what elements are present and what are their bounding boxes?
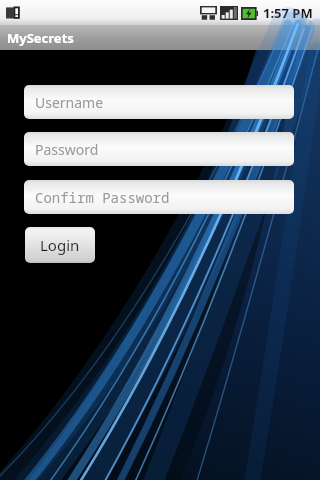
staticText: Login [40,235,80,255]
staticText: Username [35,93,104,112]
button[interactable]: Confirm Password [24,180,294,214]
staticText: 1:57 PM [263,4,313,22]
staticText: Confirm Password [35,188,170,207]
button[interactable]: Password [24,132,294,166]
button[interactable]: Login [25,227,95,263]
staticText: MySecrets [7,29,74,47]
button[interactable]: Username [24,85,294,119]
staticText: Password [35,140,99,159]
